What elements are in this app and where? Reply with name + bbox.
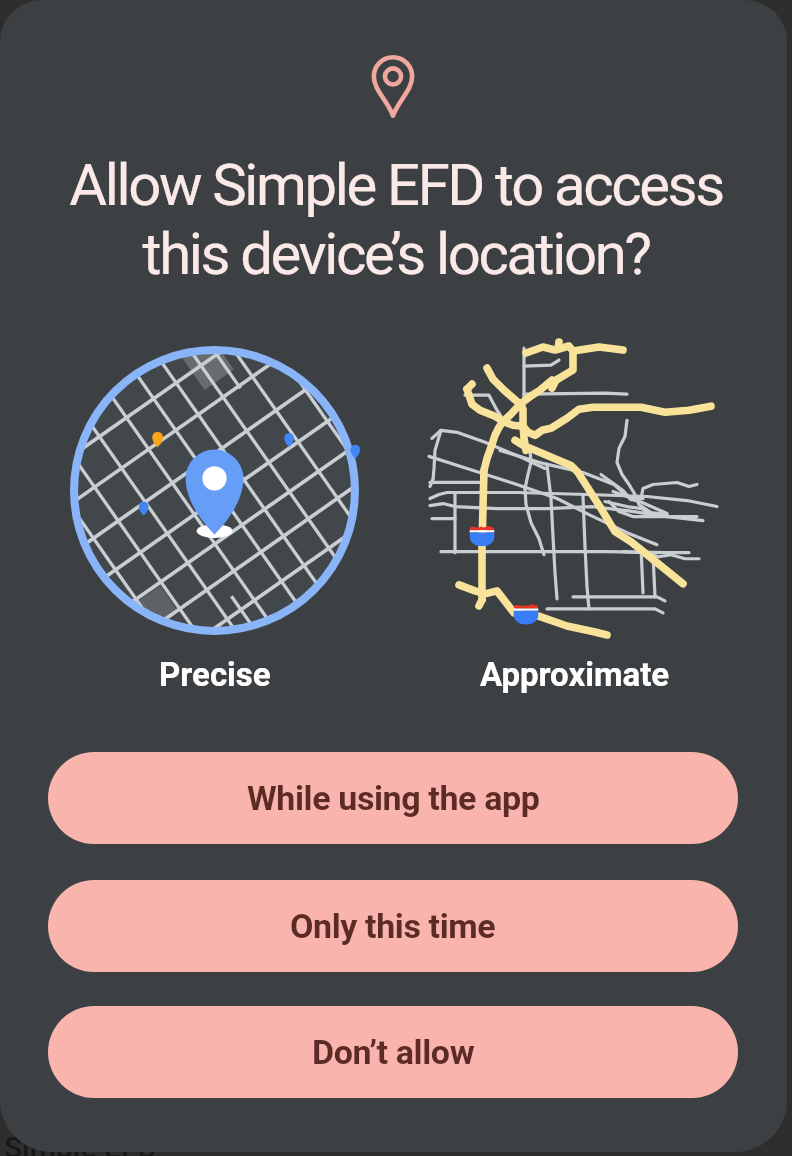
button[interactable]: Precise location bbox=[70, 346, 359, 635]
staticText: Only this time bbox=[290, 906, 496, 946]
staticText: Simple EFD bbox=[4, 1130, 158, 1156]
button[interactable]: While using the app bbox=[48, 752, 738, 844]
staticText: Approximate bbox=[480, 655, 670, 694]
staticText: Allow Simple EFD to access this device’s… bbox=[46, 151, 746, 289]
button[interactable]: Don’t allow bbox=[48, 1006, 738, 1098]
staticText: While using the app bbox=[247, 778, 540, 818]
button[interactable]: Approximate location bbox=[427, 346, 723, 635]
button[interactable]: Only this time bbox=[48, 880, 738, 972]
staticText: Don’t allow bbox=[312, 1032, 475, 1072]
staticText: Precise bbox=[159, 655, 271, 694]
